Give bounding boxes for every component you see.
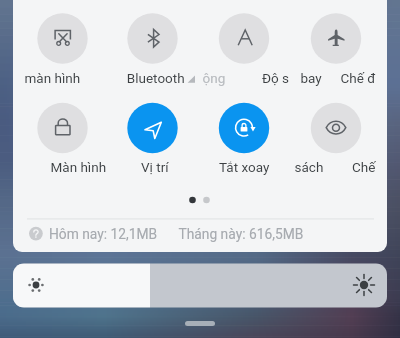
button[interactable]	[0, 0, 400, 338]
